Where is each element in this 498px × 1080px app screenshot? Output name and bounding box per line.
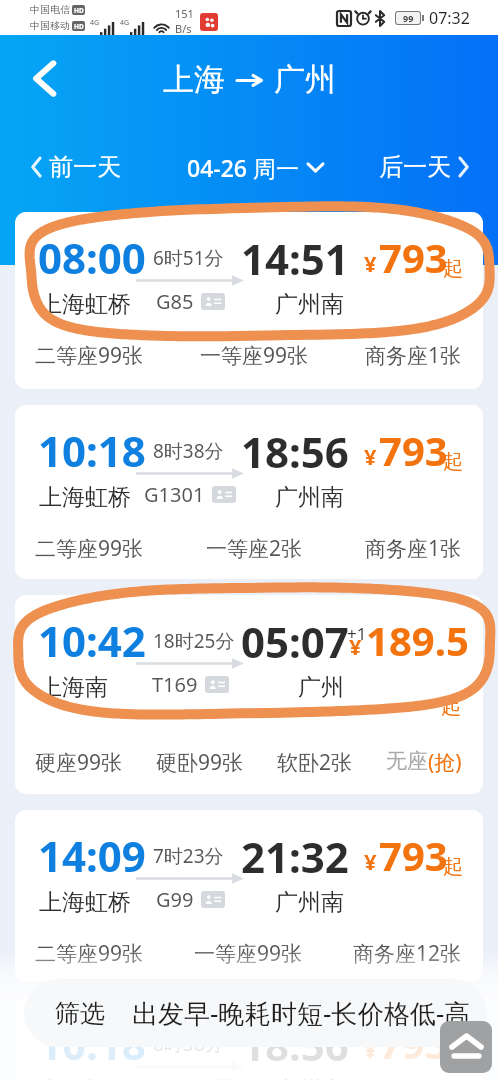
button[interactable]: 价格低-高	[358, 979, 471, 1047]
button[interactable]: Scroll to top	[440, 1021, 492, 1073]
staticText: 10:42	[38, 612, 146, 669]
staticText: 商务座1张	[365, 534, 462, 563]
staticText: ¥	[364, 846, 377, 876]
staticText: B/s	[175, 21, 192, 36]
staticText: 起	[441, 694, 461, 719]
staticText: 08:00	[38, 229, 146, 286]
staticText: 无座	[386, 748, 428, 774]
staticText: G85	[156, 288, 194, 315]
staticText: 二等座99张	[35, 939, 144, 968]
staticText: 商务座12张	[353, 939, 462, 968]
staticText: 10:18	[38, 422, 146, 479]
staticText: 起	[443, 1042, 463, 1067]
staticText: 上海虹桥	[39, 290, 131, 319]
staticText: 硬卧99张	[156, 748, 244, 777]
staticText: 99	[403, 12, 414, 24]
staticText: HD	[74, 6, 84, 15]
staticText: 出发早-晚	[132, 995, 245, 1031]
staticText: 18:56	[241, 423, 349, 480]
button[interactable]: 10:42	[15, 595, 483, 794]
staticText: 软卧2张	[277, 748, 353, 777]
staticText: 起	[443, 256, 463, 281]
staticText: 14:51	[241, 230, 349, 287]
staticText: 二等座99张	[35, 534, 144, 563]
staticText: 商务座1张	[365, 341, 462, 370]
staticText: G99	[156, 886, 194, 913]
staticText: 筛选	[55, 998, 105, 1029]
staticText: 21:32	[241, 828, 349, 885]
staticText: 广州	[274, 60, 336, 99]
staticText: 8时38分	[153, 1031, 224, 1057]
staticText: 8时38分	[153, 438, 224, 464]
staticText: 中国电信	[30, 3, 70, 16]
staticText: 价格低-高	[358, 995, 471, 1031]
button[interactable]: 出发早-晚	[132, 979, 245, 1047]
staticText: (抢)	[428, 748, 462, 777]
staticText: HD	[74, 22, 84, 31]
staticText: 前一天	[49, 152, 121, 182]
staticText: 793	[379, 423, 448, 477]
button[interactable]: Back	[22, 56, 66, 100]
staticText: 793	[379, 230, 448, 284]
button[interactable]: 耗时短-长	[245, 979, 358, 1047]
staticText: 07:32	[429, 7, 470, 29]
staticText: 起	[443, 449, 463, 474]
button[interactable]: 筛选	[24, 979, 132, 1047]
button[interactable]: 后一天	[373, 146, 474, 188]
staticText: ¥	[364, 441, 377, 471]
staticText: 151	[175, 6, 194, 21]
staticText: 起	[443, 854, 463, 879]
staticText: 4G	[90, 18, 100, 28]
staticText: 793	[379, 1016, 448, 1070]
staticText: 18:56	[241, 1016, 349, 1073]
staticText: 广州南	[275, 290, 344, 319]
button[interactable]: 10:18	[15, 405, 483, 579]
button[interactable]: 14:09	[15, 810, 483, 982]
staticText: 硬座99张	[35, 748, 123, 777]
staticText: 一等座99张	[200, 341, 309, 370]
staticText: 一等座99张	[194, 939, 303, 968]
staticText: ¥	[364, 1034, 377, 1064]
staticText: 189.5	[366, 613, 469, 667]
button[interactable]: 前一天	[26, 146, 127, 188]
staticText: 793	[379, 828, 448, 882]
staticText: 二等座99张	[35, 341, 144, 370]
staticText: 上海南	[39, 673, 108, 702]
staticText: 中国移动	[30, 19, 70, 32]
staticText: 6时51分	[153, 245, 224, 271]
staticText: 广州	[298, 673, 344, 702]
button[interactable]: 04-26 周一	[181, 146, 329, 189]
staticText: 广州南	[275, 888, 344, 917]
staticText: 后一天	[379, 152, 451, 182]
staticText: 05:07	[241, 613, 349, 670]
staticText: T169	[152, 671, 198, 698]
staticText: 广州南	[275, 1076, 344, 1080]
staticText: 7时23分	[153, 843, 224, 869]
staticText: 上海虹桥	[39, 483, 131, 512]
staticText: 04-26 周一	[187, 152, 299, 183]
staticText: 广州南	[275, 483, 344, 512]
staticText: 14:09	[38, 827, 146, 884]
staticText: 4G	[120, 18, 130, 28]
staticText: G1301	[144, 481, 205, 508]
staticText: ¥	[349, 631, 362, 661]
staticText: 10:18	[38, 1015, 146, 1072]
staticText: +1	[347, 622, 367, 645]
button[interactable]: 10:18	[15, 998, 483, 1080]
staticText: 18时25分	[153, 628, 235, 654]
staticText: 耗时短-长	[245, 995, 358, 1031]
button[interactable]: 08:00	[15, 212, 483, 389]
staticText: 一等座2张	[206, 534, 303, 563]
staticText: 上海虹桥	[39, 888, 131, 917]
staticText: ¥	[364, 248, 377, 278]
staticText: 上海	[163, 60, 225, 99]
